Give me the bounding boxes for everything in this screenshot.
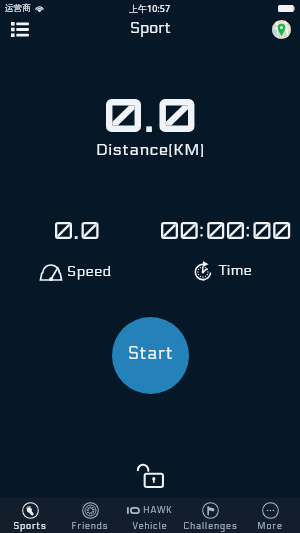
staticText: More <box>257 521 283 532</box>
button[interactable]: Unlock <box>131 455 169 493</box>
staticText: Friends <box>71 521 109 532</box>
button[interactable]: Challenges <box>180 498 240 533</box>
button[interactable]: Sports <box>0 498 60 533</box>
staticText: Speed <box>67 263 112 280</box>
staticText: Vehicle <box>132 521 168 532</box>
staticText: Challenges <box>183 521 238 532</box>
button[interactable]: Menu <box>4 16 36 43</box>
button[interactable]: HAWK <box>120 498 180 533</box>
button[interactable]: Friends <box>60 498 120 533</box>
button[interactable]: More <box>240 498 300 533</box>
staticText: Time <box>219 262 253 279</box>
staticText: 运营商 <box>5 3 31 14</box>
button[interactable]: Start <box>112 317 189 394</box>
staticText: HAWK <box>143 505 173 516</box>
staticText: Distance(KM) <box>96 140 205 160</box>
staticText: Sport <box>130 18 171 37</box>
staticText: Start <box>128 343 174 364</box>
staticText: 上午10:57 <box>129 2 171 14</box>
staticText: Sports <box>13 521 47 532</box>
button[interactable]: Map <box>267 16 295 43</box>
